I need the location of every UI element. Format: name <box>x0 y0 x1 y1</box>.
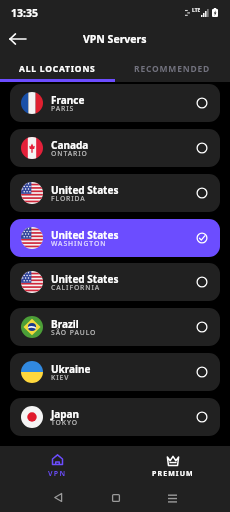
staticText: TOKYO <box>51 418 78 427</box>
staticText: United States <box>51 272 119 286</box>
button[interactable]: Back <box>2 24 32 53</box>
button[interactable]: United States <box>10 219 220 257</box>
staticText: Japan <box>51 407 80 421</box>
button[interactable]: United States <box>10 263 220 301</box>
button[interactable]: Brazil <box>10 308 220 346</box>
staticText: VPN <box>48 469 67 479</box>
staticText: SÃO PAULO <box>51 328 97 337</box>
staticText: ALL LOCATIONS <box>19 63 96 75</box>
button[interactable]: Canada <box>10 129 220 167</box>
staticText: 13:35 <box>11 6 38 20</box>
button[interactable]: PREMIUM <box>115 446 230 487</box>
button[interactable]: Recent apps <box>161 486 184 509</box>
staticText: WASHINGTON <box>51 239 107 248</box>
staticText: FLORIDA <box>51 194 86 203</box>
staticText: France <box>51 93 85 107</box>
staticText: VPN Servers <box>83 32 147 46</box>
staticText: Ukraine <box>51 362 91 376</box>
staticText: RECOMMENDED <box>134 63 211 75</box>
button[interactable]: ALL LOCATIONS <box>0 53 115 79</box>
button[interactable]: VPN <box>0 446 115 487</box>
button[interactable]: United States <box>10 174 220 212</box>
button[interactable]: Ukraine <box>10 353 220 391</box>
button[interactable]: RECOMMENDED <box>115 53 230 79</box>
staticText: KIEV <box>51 373 70 382</box>
staticText: Canada <box>51 138 89 152</box>
button[interactable]: Back <box>46 486 69 509</box>
staticText: PARIS <box>51 104 75 113</box>
button[interactable]: Home <box>104 486 127 509</box>
staticText: United States <box>51 183 119 197</box>
staticText: United States <box>51 228 119 242</box>
button[interactable]: Japan <box>10 398 220 436</box>
button[interactable]: France <box>10 84 220 122</box>
staticText: CALIFORNIA <box>51 283 101 292</box>
staticText: PREMIUM <box>152 469 194 479</box>
staticText: LTE <box>192 7 201 14</box>
staticText: Brazil <box>51 317 79 331</box>
staticText: ONTARIO <box>51 149 88 158</box>
